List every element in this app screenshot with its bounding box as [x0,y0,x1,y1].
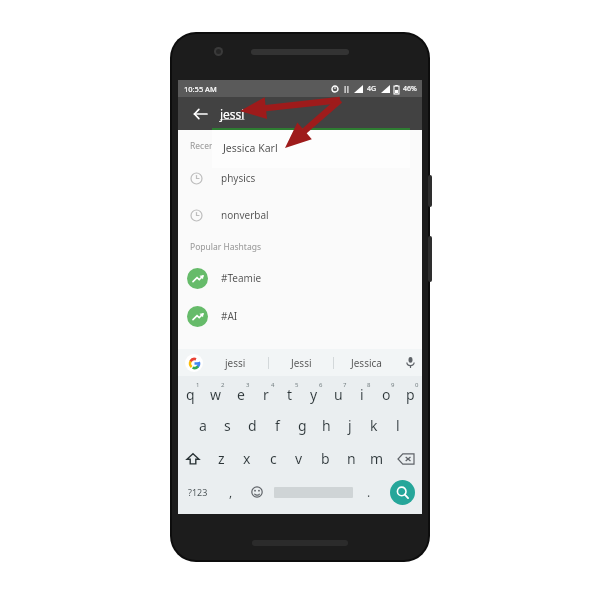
staticText: jessi [220,106,245,122]
staticText: jessi [225,356,246,370]
button[interactable]: i [350,383,374,409]
button[interactable]: Google [185,354,203,372]
button[interactable]: p [398,383,422,409]
staticText: d [248,416,257,435]
button[interactable]: c [260,442,286,475]
button[interactable]: Voice input [398,349,422,376]
staticText: 4G [367,84,377,94]
staticText: r [263,385,269,404]
staticText: z [218,449,225,468]
staticText: 9 [391,381,395,389]
button[interactable]: . [356,475,382,509]
button[interactable]: k [362,409,386,442]
staticText: l [396,416,400,435]
staticText: 4 [271,381,275,389]
staticText: Popular Hashtags [190,241,261,253]
button[interactable]: Emoji [244,475,270,509]
button[interactable]: Jessica [334,349,398,376]
button[interactable]: physics [178,168,422,188]
staticText: b [321,449,330,468]
staticText: 8 [367,381,371,389]
staticText: 3 [246,381,250,389]
staticText: u [334,385,343,404]
staticText: f [275,416,280,435]
button[interactable]: z [208,442,234,475]
button[interactable]: a [190,409,215,442]
button[interactable]: x [234,442,260,475]
staticText: 0 [415,381,419,389]
staticText: j [348,416,352,435]
button[interactable]: jessi [203,349,268,376]
staticText: n [347,449,356,468]
button[interactable]: v [286,442,312,475]
button[interactable]: , [218,475,244,509]
staticText: #AI [221,309,238,323]
staticText: . [367,484,371,500]
staticText: y [310,385,318,404]
button[interactable]: Jessi [269,349,333,376]
button[interactable]: g [290,409,314,442]
staticText: g [298,416,307,435]
button[interactable]: f [265,409,290,442]
button[interactable]: ?123 [178,475,218,509]
staticText: 6 [319,381,323,389]
staticText: , [229,484,233,500]
staticText: #Teamie [221,271,262,285]
staticText: a [199,416,207,435]
staticText: i [360,385,364,404]
staticText: s [224,416,231,435]
staticText: q [186,385,195,404]
button[interactable]: e [228,383,253,409]
button[interactable]: y [302,383,326,409]
staticText: p [406,385,415,404]
button[interactable]: d [240,409,265,442]
staticText: 2 [221,381,225,389]
button[interactable]: o [374,383,398,409]
staticText: k [370,416,378,435]
staticText: m [370,449,384,468]
button[interactable]: t [278,383,302,409]
button[interactable]: Jessica Karl [212,130,410,168]
staticText: 7 [343,381,347,389]
button[interactable]: jessi [220,106,422,122]
button[interactable]: l [386,409,410,442]
staticText: ?123 [188,486,208,498]
button[interactable]: #Teamie [178,263,422,293]
button[interactable]: r [253,383,278,409]
staticText: Recent [190,140,218,152]
button[interactable]: Backspace [390,442,422,475]
button[interactable]: Search [390,480,415,505]
staticText: Jessi [291,356,312,370]
staticText: Jessica [351,356,382,370]
staticText: 46% [403,84,417,94]
staticText: physics [221,171,256,185]
staticText: t [287,385,293,404]
button[interactable]: nonverbal [178,205,422,225]
button[interactable] [270,475,356,509]
button[interactable]: h [314,409,338,442]
staticText: Jessica Karl [223,141,278,155]
button[interactable]: Back [188,102,212,126]
button[interactable]: #AI [178,301,422,331]
button[interactable]: u [326,383,350,409]
staticText: 1 [196,381,200,389]
staticText: 5 [295,381,299,389]
button[interactable]: s [215,409,240,442]
button[interactable]: Shift [178,442,208,475]
staticText: h [322,416,331,435]
staticText: c [270,449,277,468]
staticText: w [210,385,222,404]
staticText: x [243,449,251,468]
staticText: o [382,385,391,404]
staticText: v [295,449,303,468]
button[interactable]: n [338,442,364,475]
button[interactable]: q [178,383,203,409]
staticText: 10:55 AM [184,84,217,94]
button[interactable]: w [203,383,228,409]
staticText: nonverbal [221,208,269,222]
button[interactable]: b [312,442,338,475]
staticText: e [237,385,245,404]
button[interactable]: m [364,442,390,475]
button[interactable]: j [338,409,362,442]
